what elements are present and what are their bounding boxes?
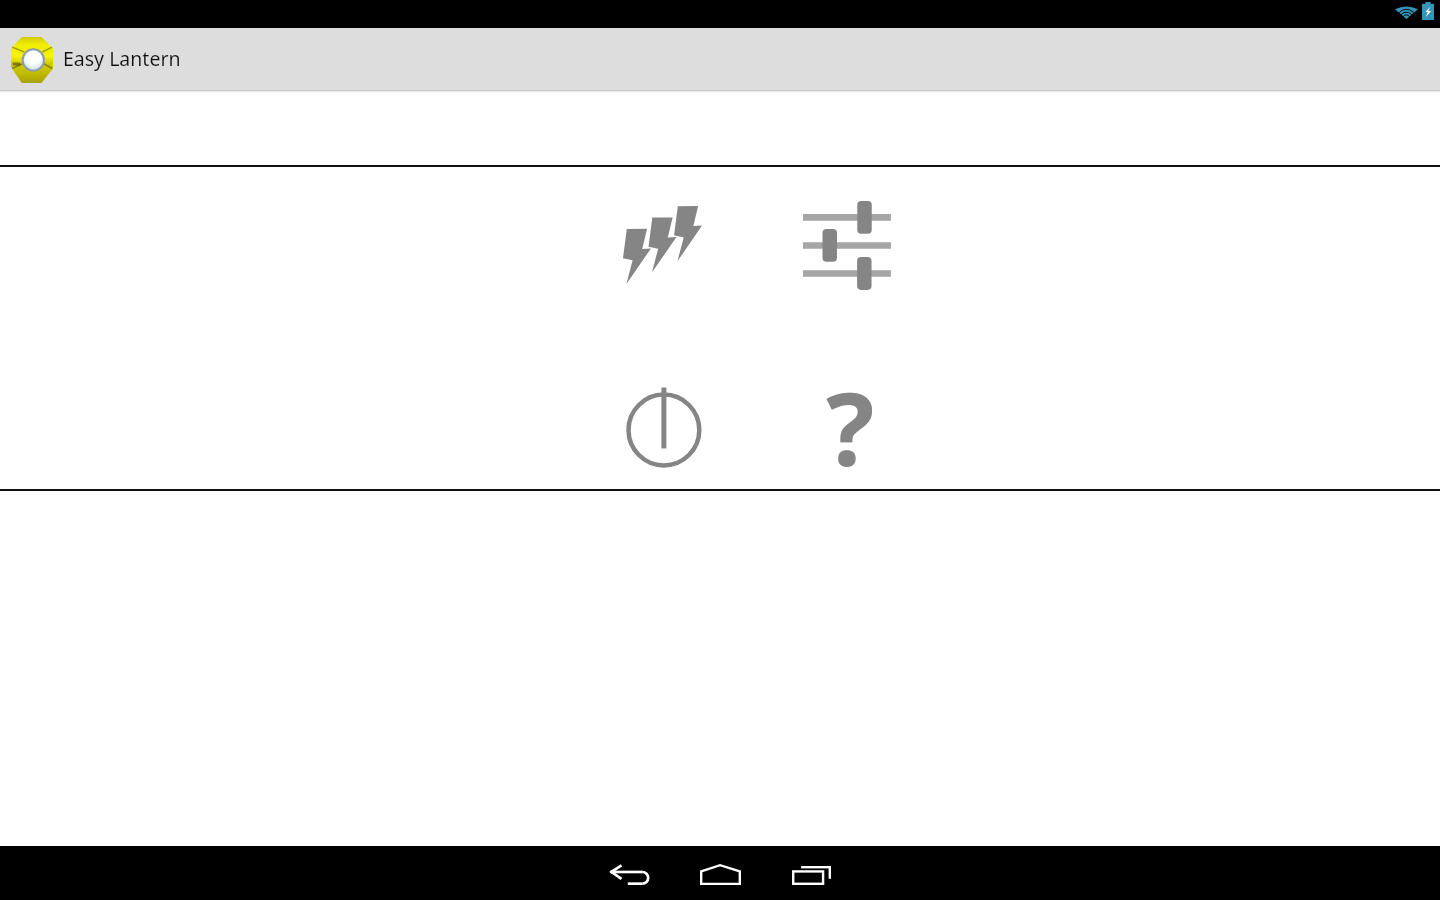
button[interactable]: Strobe [572, 167, 756, 323]
button[interactable]: Settings [756, 167, 940, 323]
button[interactable]: Home [675, 846, 766, 900]
staticText: ? [826, 358, 875, 482]
button[interactable]: Power [572, 365, 756, 489]
staticText: Easy Lantern [63, 45, 181, 72]
button[interactable]: Help [757, 365, 941, 489]
button[interactable]: Back [584, 846, 675, 900]
button[interactable]: Recent apps [766, 846, 857, 900]
